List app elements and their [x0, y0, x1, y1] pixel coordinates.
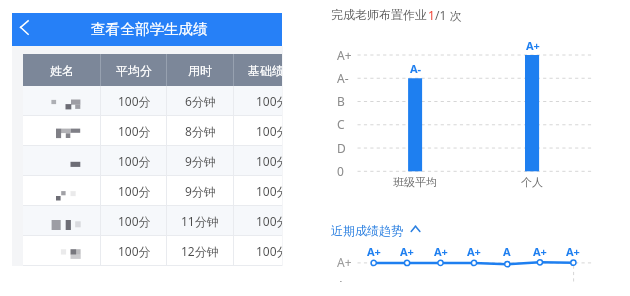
staticText: A+ — [566, 244, 580, 259]
button[interactable]: Back — [12, 13, 282, 46]
staticText: 9分钟 — [185, 183, 216, 199]
staticText: 100分 — [256, 93, 282, 109]
staticText: A- — [410, 61, 422, 76]
staticText: 100分 — [256, 243, 282, 259]
staticText: A+ — [337, 254, 352, 269]
staticText: A+ — [533, 244, 547, 259]
staticText: A+ — [526, 38, 540, 53]
staticText: A+ — [434, 244, 448, 259]
staticText: 8分钟 — [185, 123, 216, 139]
staticText: 基础绩效 — [248, 63, 282, 78]
staticText: 100分 — [118, 153, 151, 169]
staticText: 100分 — [118, 213, 151, 229]
staticText: 6分钟 — [185, 93, 216, 109]
staticText: 近期成绩趋势 — [331, 223, 403, 238]
staticText: A — [503, 244, 511, 259]
staticText: 完成老师布置作业 — [331, 7, 427, 22]
staticText: C — [337, 116, 345, 131]
staticText: 0 — [337, 163, 344, 178]
staticText: 100分 — [118, 93, 151, 109]
staticText: 姓名 — [50, 63, 74, 78]
staticText: 100分 — [256, 123, 282, 139]
staticText: 11分钟 — [181, 213, 219, 229]
staticText: 用时 — [188, 63, 212, 78]
staticText: 查看全部学生成绩 — [91, 20, 208, 38]
button[interactable]: 近期成绩趋势 — [331, 223, 421, 238]
staticText: 100分 — [118, 183, 151, 199]
staticText: A+ — [337, 47, 352, 62]
staticText: 100分 — [256, 153, 282, 169]
staticText: 100分 — [118, 123, 151, 139]
button[interactable]: Back — [12, 13, 38, 46]
staticText: 100分 — [118, 243, 151, 259]
staticText: 班级平均 — [393, 175, 437, 189]
staticText: B — [337, 93, 345, 108]
staticText: 9分钟 — [185, 153, 216, 169]
staticText: 100分 — [256, 213, 282, 229]
staticText: A+ — [367, 244, 381, 259]
staticText: A- — [337, 70, 349, 85]
staticText: 平均分 — [116, 63, 152, 78]
staticText: 12分钟 — [181, 243, 219, 259]
staticText: A+ — [400, 244, 414, 259]
staticText: 1 — [428, 7, 435, 23]
staticText: 100分 — [256, 183, 282, 199]
staticText: A — [337, 277, 345, 282]
staticText: D — [337, 140, 346, 155]
staticText: A+ — [467, 244, 481, 259]
staticText: /1 次 — [435, 7, 462, 23]
staticText: 个人 — [521, 175, 543, 189]
